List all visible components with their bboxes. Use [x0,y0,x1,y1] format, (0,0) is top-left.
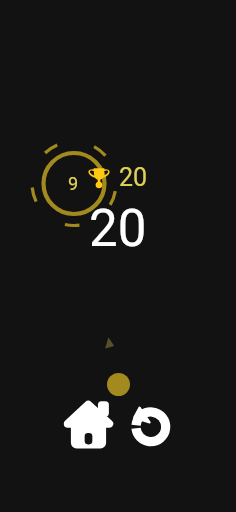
button[interactable]: Replay [131,404,175,448]
staticText: 20 [119,163,148,192]
staticText: 20 [89,199,147,259]
staticText: 9 [68,173,79,194]
button[interactable]: Marker [107,373,130,396]
button[interactable]: Home [63,399,114,450]
